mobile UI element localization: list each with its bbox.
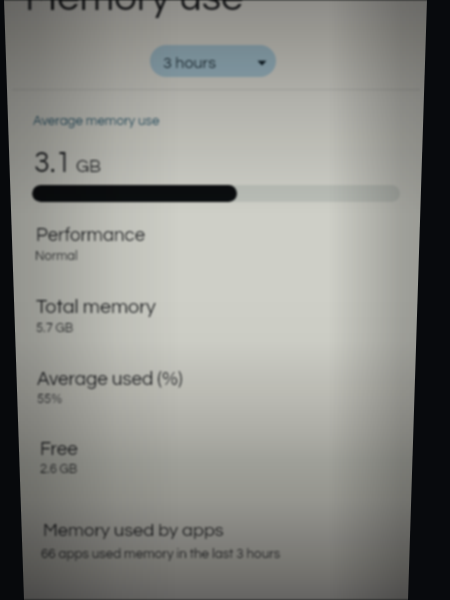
staticText: Free [40,440,78,459]
staticText: 3 hours [163,55,216,72]
button[interactable]: Memory used by apps [0,515,450,571]
button[interactable]: Performance [0,220,450,272]
button[interactable]: Average used (%) [0,364,450,416]
staticText: 66 apps used memory in the last 3 hours [41,547,281,561]
staticText: GB [76,157,102,176]
other: Change time range [254,59,270,67]
staticText: 5.7 GB [36,321,74,334]
staticText: Total memory [36,297,156,317]
staticText: Memory use [25,0,244,18]
staticText: Normal [35,249,78,262]
button[interactable]: Free [0,434,450,486]
staticText: Average used (%) [37,370,183,389]
staticText: 55% [37,392,63,405]
staticText: Performance [36,226,146,245]
staticText: 2.6 GB [40,462,78,475]
staticText: 3.1 [34,149,72,178]
button[interactable]: Total memory [0,291,450,343]
staticText: Average memory use [33,114,160,128]
button[interactable]: 3 hours [150,45,276,77]
staticText: Memory used by apps [43,521,224,540]
